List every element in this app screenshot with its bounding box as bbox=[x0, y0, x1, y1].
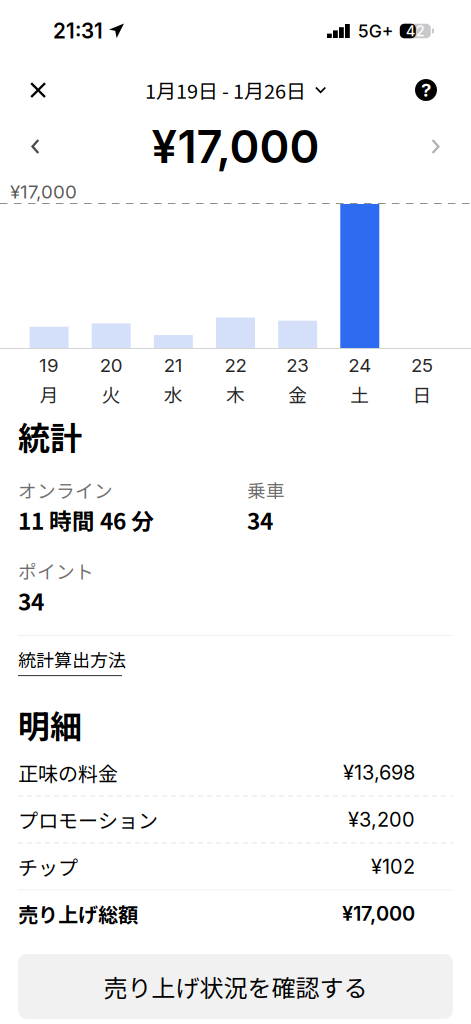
staticText: 金 bbox=[288, 381, 307, 408]
button[interactable]: 前の週 bbox=[18, 126, 53, 167]
staticText: ¥17,000 bbox=[151, 119, 319, 174]
staticText: オンライン bbox=[18, 476, 113, 503]
staticText: 火 bbox=[102, 381, 121, 408]
staticText: 11 時間 46 分 bbox=[18, 503, 154, 536]
staticText: 21 bbox=[164, 354, 183, 377]
staticText: 20 bbox=[100, 354, 123, 377]
button[interactable]: 正味の料金 bbox=[18, 749, 453, 795]
staticText: 木 bbox=[226, 381, 245, 408]
button[interactable]: 閉じる bbox=[19, 71, 57, 109]
staticText: 明細 bbox=[18, 701, 82, 747]
staticText: ¥102 bbox=[371, 854, 415, 878]
staticText: 34 bbox=[18, 584, 44, 617]
staticText: ¥17,000 bbox=[10, 180, 77, 203]
button[interactable]: 売り上げ状況を確認する bbox=[18, 954, 453, 1019]
staticText: ¥17,000 bbox=[342, 901, 415, 925]
staticText: 日 bbox=[412, 381, 431, 408]
staticText: 土 bbox=[350, 381, 369, 408]
staticText: 月 bbox=[40, 381, 59, 408]
staticText: 統計 bbox=[18, 413, 82, 459]
staticText: ¥3,200 bbox=[348, 807, 415, 831]
staticText: 21:31 bbox=[53, 18, 103, 43]
staticText: プロモーション bbox=[18, 805, 158, 834]
button[interactable]: 統計算出方法 bbox=[18, 641, 126, 681]
button[interactable]: 1月19日 - 1月26日 bbox=[137, 67, 334, 112]
button[interactable]: 次の週 bbox=[418, 126, 453, 167]
staticText: 乗車 bbox=[247, 476, 285, 503]
staticText: 19 bbox=[39, 354, 59, 377]
staticText: 22 bbox=[224, 354, 246, 377]
staticText: 統計算出方法 bbox=[18, 646, 126, 672]
staticText: 水 bbox=[164, 381, 183, 408]
staticText: 売り上げ総額 bbox=[18, 899, 138, 928]
staticText: 正味の料金 bbox=[18, 758, 118, 787]
button[interactable]: チップ bbox=[18, 843, 453, 889]
staticText: 5G+ bbox=[358, 20, 394, 42]
staticText: ¥13,698 bbox=[343, 760, 415, 784]
staticText: 34 bbox=[247, 503, 273, 536]
staticText: 42 bbox=[406, 22, 425, 40]
staticText: チップ bbox=[18, 852, 78, 881]
staticText: 売り上げ状況を確認する bbox=[103, 969, 367, 1004]
staticText: 23 bbox=[286, 354, 309, 377]
staticText: ? bbox=[421, 79, 431, 101]
button[interactable]: 売り上げ総額 bbox=[18, 890, 453, 936]
staticText: ポイント bbox=[18, 557, 94, 584]
button[interactable]: ヘルプ bbox=[406, 70, 446, 110]
button[interactable]: プロモーション bbox=[18, 796, 453, 842]
staticText: 24 bbox=[348, 354, 371, 377]
staticText: 1月19日 - 1月26日 bbox=[145, 75, 306, 104]
staticText: 25 bbox=[411, 354, 433, 377]
